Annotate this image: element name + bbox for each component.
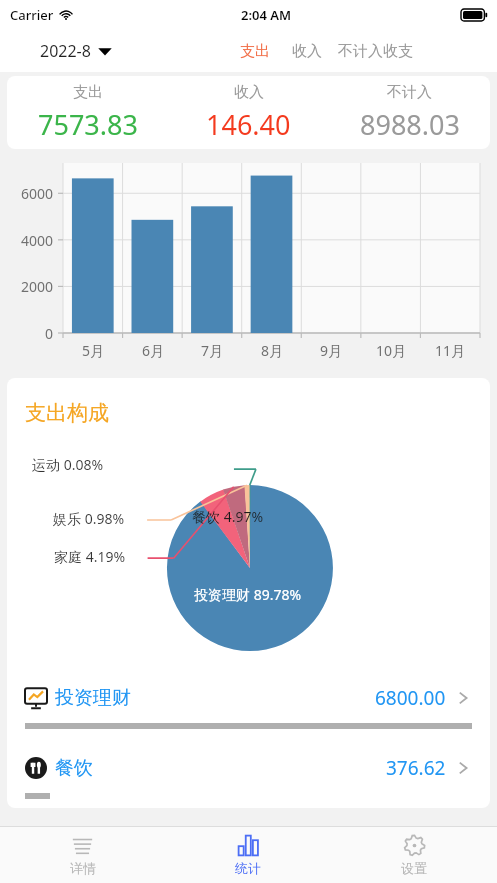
staticText: 0 [45,324,54,343]
staticText: 376.62 [386,755,446,781]
button[interactable]: 详情 [0,827,165,883]
button[interactable]: 2022-8 [40,40,113,62]
button[interactable]: 设置 [331,827,497,883]
staticText: 146.40 [206,106,291,143]
staticText: 家庭 4.19% [54,547,126,566]
staticText: 投资理财 [55,686,131,710]
staticText: 支出 [73,83,103,102]
staticText: 支出 [240,42,270,61]
button[interactable]: 不计入收支 [332,38,419,65]
staticText: 6800.00 [375,685,446,711]
staticText: 2:04 AM [241,6,292,24]
button[interactable]: 支出 [234,38,276,65]
button[interactable]: 支出 [7,76,168,149]
staticText: 详情 [70,860,96,876]
staticText: 5月 [82,341,105,360]
staticText: 7573.83 [38,106,138,143]
staticText: 收入 [292,42,322,61]
staticText: 8月 [261,341,284,360]
button[interactable]: 收入 [286,38,328,65]
staticText: 支出构成 [25,400,109,426]
staticText: 2000 [21,277,54,296]
button[interactable]: 收入 [168,76,329,149]
staticText: 10月 [376,341,407,360]
staticText: 11月 [435,341,466,360]
staticText: 2022-8 [40,40,91,62]
staticText: 6月 [142,341,165,360]
staticText: 4000 [21,231,54,250]
staticText: 6000 [21,184,54,203]
staticText: 娱乐 0.98% [53,509,125,528]
staticText: 统计 [235,860,261,876]
staticText: 9月 [320,341,343,360]
staticText: Carrier [10,6,54,24]
staticText: 收入 [234,83,264,102]
button[interactable]: 餐饮 [7,743,490,808]
staticText: 投资理财 89.78% [194,585,302,604]
staticText: 设置 [401,860,427,876]
staticText: 餐饮 [55,756,93,780]
button[interactable]: 统计 [165,827,331,883]
staticText: 7月 [201,341,224,360]
button[interactable]: 投资理财 [7,673,490,743]
staticText: 不计入收支 [338,42,413,61]
staticText: 8988.03 [360,106,460,143]
staticText: 不计入 [387,83,432,102]
staticText: 运动 0.08% [32,455,104,474]
button[interactable]: 不计入 [329,76,490,149]
staticText: 餐饮 4.97% [192,507,264,526]
